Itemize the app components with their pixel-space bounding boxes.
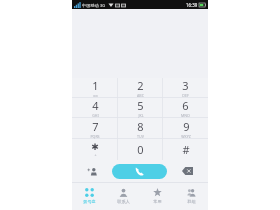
- staticText: 9: [183, 119, 190, 134]
- staticText: 常用: [153, 199, 162, 204]
- staticText: MNO: [181, 113, 190, 118]
- staticText: JKL: [138, 113, 144, 118]
- staticText: +: [94, 152, 97, 157]
- button[interactable]: 6: [163, 98, 208, 118]
- button[interactable]: 0: [118, 139, 163, 160]
- button[interactable]: 拨号盘: [72, 182, 106, 210]
- button[interactable]: 1: [72, 78, 118, 98]
- button[interactable]: Delete: [167, 160, 208, 182]
- staticText: oo: [93, 93, 98, 98]
- staticText: WXYZ: [181, 134, 191, 139]
- button[interactable]: Add contact: [72, 160, 112, 182]
- staticText: 联系人: [117, 199, 130, 204]
- staticText: 7: [92, 119, 99, 134]
- button[interactable]: 3: [163, 78, 208, 98]
- staticText: 1: [92, 78, 99, 93]
- staticText: 6: [182, 98, 189, 113]
- button[interactable]: 8: [118, 118, 163, 139]
- button[interactable]: 2: [118, 78, 163, 98]
- staticText: 拨号盘: [83, 199, 96, 204]
- staticText: PQRS: [90, 134, 100, 139]
- staticText: 0: [137, 142, 144, 157]
- staticText: ABC: [137, 93, 144, 98]
- button[interactable]: 4: [72, 98, 118, 118]
- staticText: 3: [182, 78, 189, 93]
- staticText: GHI: [92, 113, 99, 118]
- staticText: ✱: [91, 142, 99, 152]
- staticText: 8: [137, 119, 144, 134]
- staticText: #: [182, 142, 190, 157]
- staticText: TUV: [137, 134, 144, 139]
- staticText: 中国移动: [82, 3, 99, 8]
- staticText: 16:39: [186, 2, 198, 8]
- button[interactable]: 常用: [140, 182, 174, 210]
- staticText: 5: [137, 98, 144, 113]
- button[interactable]: 7: [72, 118, 118, 139]
- button[interactable]: 5: [118, 98, 163, 118]
- staticText: 4: [92, 98, 99, 113]
- button[interactable]: Call: [112, 164, 167, 179]
- staticText: 3G: [100, 3, 106, 8]
- button[interactable]: 9: [163, 118, 208, 139]
- staticText: DEF: [182, 93, 189, 98]
- staticText: 2: [137, 78, 144, 93]
- button[interactable]: 群组: [174, 182, 208, 210]
- button[interactable]: 联系人: [106, 182, 140, 210]
- button[interactable]: #: [163, 139, 208, 160]
- staticText: 群组: [187, 199, 196, 204]
- button[interactable]: ✱: [72, 139, 118, 160]
